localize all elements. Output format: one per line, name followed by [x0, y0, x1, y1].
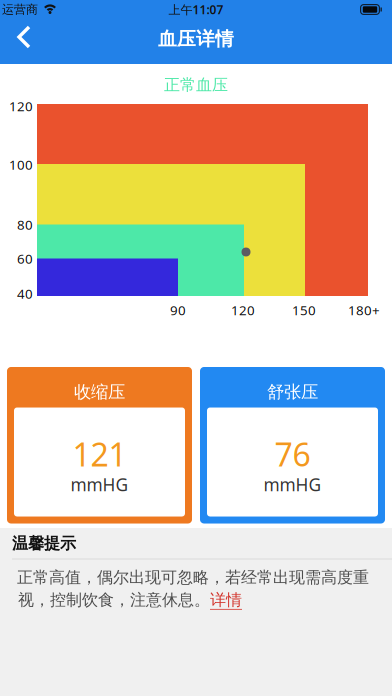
- staticText: 180+: [348, 301, 380, 319]
- staticText: 舒张压: [267, 381, 318, 403]
- staticText: 血压详情: [158, 27, 234, 50]
- staticText: 视，控制饮食，注意休息。: [18, 590, 210, 610]
- staticText: 120: [231, 301, 255, 319]
- staticText: 正常高值，偶尔出现可忽略，若经常出现需高度重: [17, 568, 369, 587]
- staticText: 76: [274, 433, 310, 475]
- staticText: 150: [292, 301, 316, 319]
- staticText: 详情: [210, 590, 242, 610]
- staticText: 正常血压: [164, 75, 228, 95]
- button[interactable]: 详情: [210, 590, 242, 610]
- staticText: mmHG: [70, 473, 128, 496]
- staticText: 80: [17, 216, 33, 233]
- staticText: 收缩压: [74, 381, 125, 403]
- staticText: 90: [170, 301, 186, 319]
- button[interactable]: Back: [2, 17, 46, 57]
- staticText: 100: [9, 156, 33, 173]
- staticText: mmHG: [263, 473, 321, 496]
- staticText: 40: [17, 285, 33, 302]
- staticText: 运营商: [2, 2, 38, 17]
- staticText: 温馨提示: [12, 534, 76, 553]
- staticText: 120: [9, 97, 33, 115]
- staticText: 121: [72, 433, 126, 475]
- staticText: 60: [17, 250, 33, 267]
- staticText: 上午11:07: [168, 1, 223, 17]
